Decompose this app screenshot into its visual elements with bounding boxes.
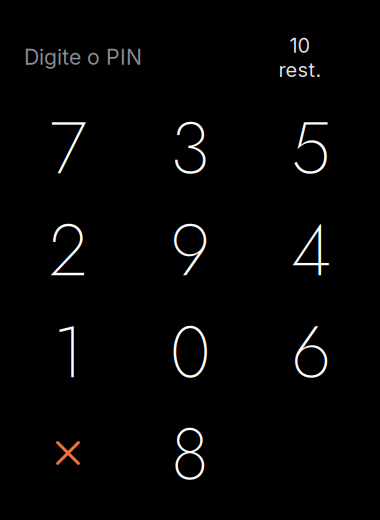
button[interactable]: 0 xyxy=(131,303,249,401)
button[interactable]: 8 xyxy=(131,405,249,503)
button[interactable]: 9 xyxy=(131,201,249,299)
staticText: 9 xyxy=(170,199,209,302)
staticText: 1 xyxy=(53,301,83,404)
staticText: 8 xyxy=(171,403,209,506)
button[interactable]: 2 xyxy=(9,201,127,299)
button[interactable]: 5 xyxy=(252,99,370,197)
button[interactable]: 3 xyxy=(131,99,249,197)
button[interactable]: 6 xyxy=(252,303,370,401)
staticText: 5 xyxy=(291,97,331,200)
button[interactable]: 7 xyxy=(9,99,127,197)
button[interactable]: 1 xyxy=(9,303,127,401)
staticText: 0 xyxy=(170,301,210,404)
staticText: 6 xyxy=(291,301,330,404)
staticText: Digite o PIN xyxy=(24,44,142,70)
button[interactable]: Delete xyxy=(9,404,127,502)
staticText: rest. xyxy=(278,57,321,82)
staticText: 7 xyxy=(49,97,86,200)
staticText: 4 xyxy=(291,199,331,302)
staticText: 2 xyxy=(49,199,87,302)
staticText: 3 xyxy=(170,97,209,200)
staticText: 10 xyxy=(289,33,310,57)
button[interactable]: 4 xyxy=(252,201,370,299)
